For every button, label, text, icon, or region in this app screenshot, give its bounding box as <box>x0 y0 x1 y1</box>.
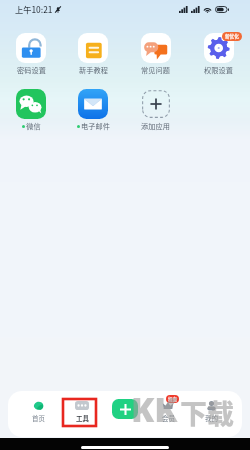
staticText: 我的 <box>205 413 218 422</box>
staticText: 上午10:21 <box>15 3 53 15</box>
staticText: KK <box>131 386 178 432</box>
staticText: 密码设置 <box>17 65 46 75</box>
button[interactable]: 常见问题 <box>124 33 187 75</box>
button[interactable]: 首页 <box>21 397 55 425</box>
staticText: 工具 <box>76 413 89 422</box>
button[interactable]: 工具 <box>65 397 99 425</box>
staticText: 新优化 <box>225 33 239 40</box>
staticText: 新手教程 <box>79 65 108 75</box>
button[interactable]: 特惠 <box>151 397 185 425</box>
staticText: 下载 <box>180 393 234 432</box>
staticText: 首页 <box>32 413 45 422</box>
button[interactable]: 添加应用 <box>124 89 187 131</box>
button[interactable]: 微信 <box>0 89 62 131</box>
staticText: 特惠 <box>168 396 177 402</box>
staticText: 常见问题 <box>141 65 170 75</box>
button[interactable]: 新手教程 <box>62 33 124 75</box>
button[interactable]: 电子邮件 <box>62 89 124 131</box>
button[interactable]: 新优化 <box>187 33 250 75</box>
staticText: 添加应用 <box>141 121 170 131</box>
button[interactable]: 添加 <box>112 399 138 419</box>
button[interactable]: 密码设置 <box>0 33 62 75</box>
staticText: 会员 <box>162 413 175 422</box>
button[interactable]: 我的 <box>194 397 228 425</box>
staticText: 微信 <box>26 121 41 131</box>
staticText: 电子邮件 <box>81 121 110 131</box>
staticText: 权限设置 <box>204 65 233 75</box>
